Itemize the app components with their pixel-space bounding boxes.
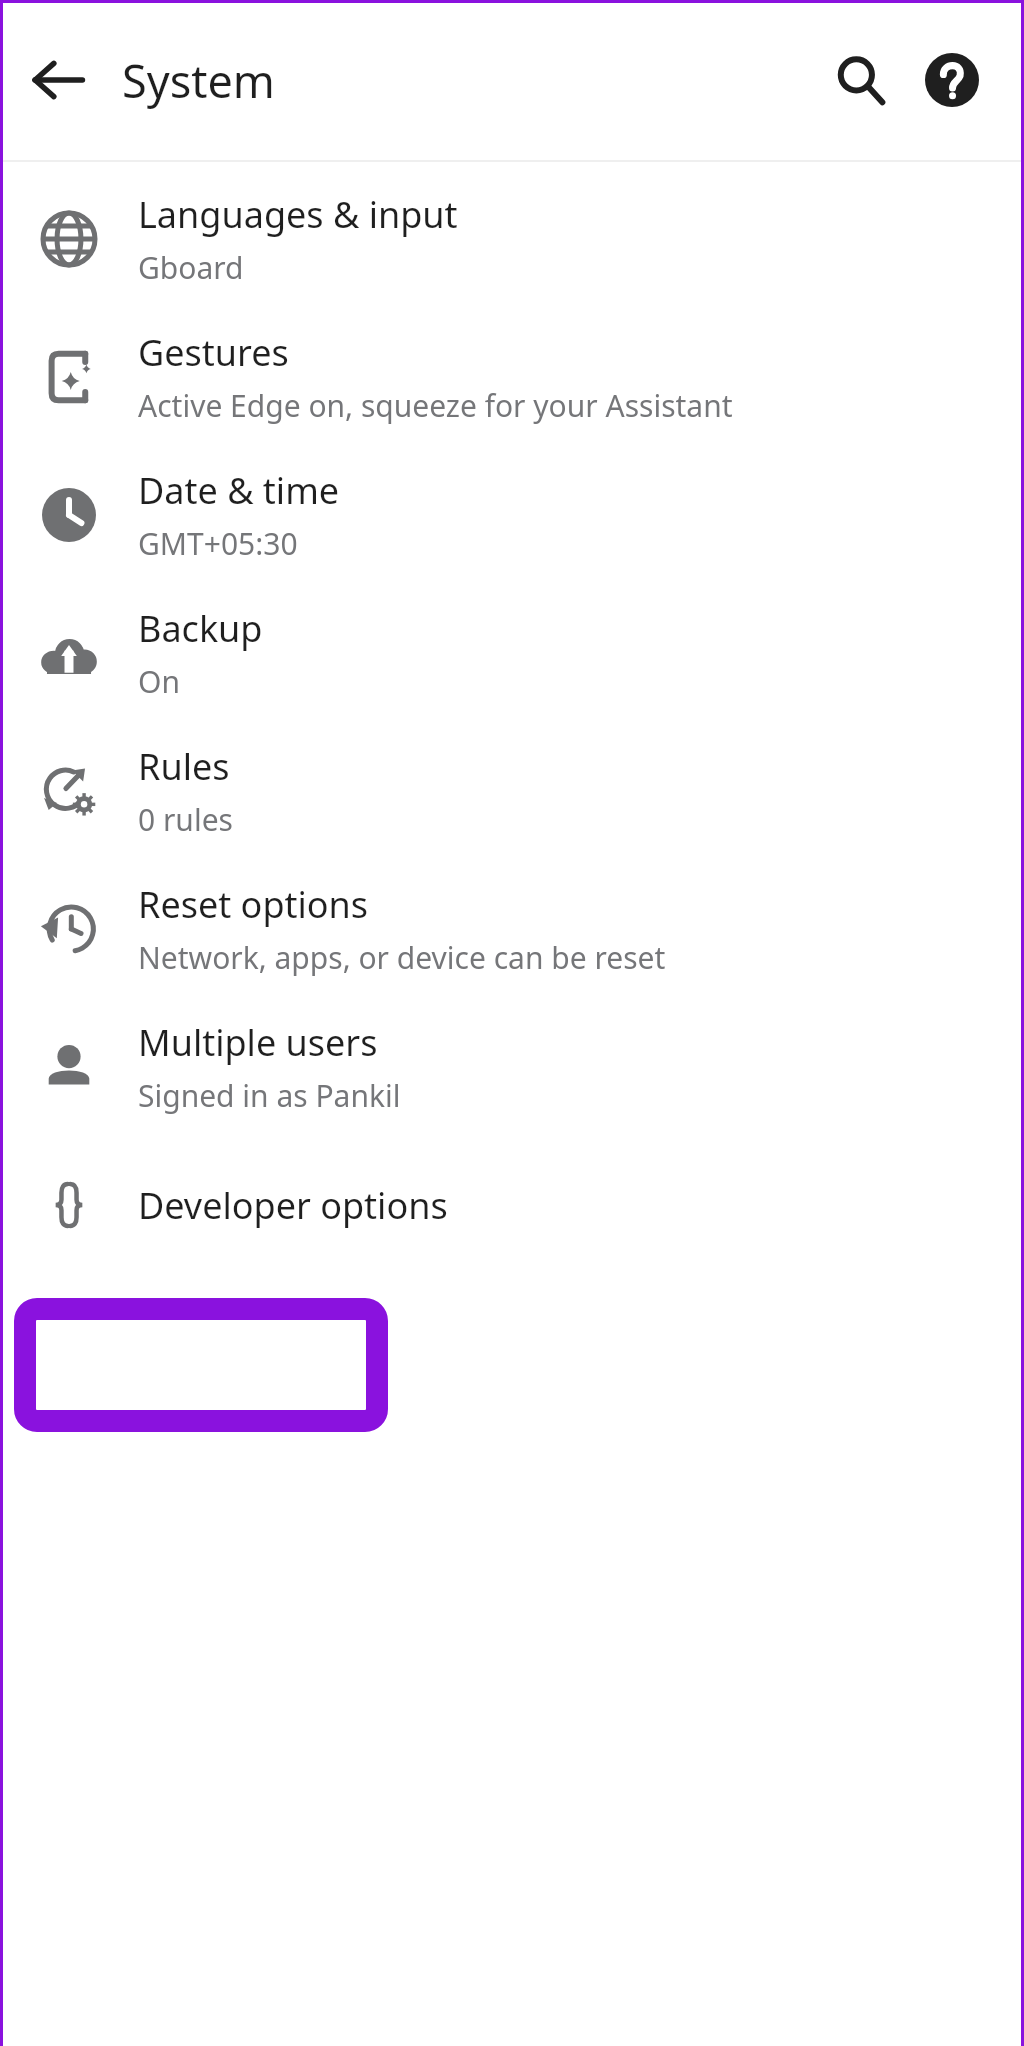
staticText: Network, apps, or device can be reset — [138, 937, 666, 978]
staticText: On — [138, 661, 180, 702]
button[interactable]: Back — [22, 44, 94, 116]
button[interactable]: Help — [910, 38, 994, 122]
staticText: 0 rules — [138, 799, 233, 840]
staticText: Date & time — [138, 466, 340, 515]
staticText: Gboard — [138, 247, 244, 288]
staticText: GMT+05:30 — [138, 523, 298, 564]
staticText: Rules — [138, 742, 230, 791]
staticText: Gestures — [138, 328, 289, 377]
staticText: Languages & input — [138, 190, 458, 239]
staticText: Reset options — [138, 880, 369, 929]
button[interactable]: Reset options — [0, 860, 1024, 998]
button[interactable]: Languages & input — [0, 170, 1024, 308]
staticText: Signed in as Pankil — [138, 1075, 401, 1116]
button[interactable]: Backup — [0, 584, 1024, 722]
staticText: Multiple users — [138, 1018, 378, 1067]
button[interactable]: Multiple users — [0, 998, 1024, 1136]
button[interactable]: Gestures — [0, 308, 1024, 446]
staticText: Active Edge on, squeeze for your Assista… — [138, 385, 733, 426]
button[interactable]: Rules — [0, 722, 1024, 860]
button[interactable]: Date & time — [0, 446, 1024, 584]
button[interactable]: Search — [818, 38, 902, 122]
staticText: Backup — [138, 604, 263, 653]
staticText: Developer options — [138, 1181, 448, 1230]
staticText: System — [122, 50, 275, 111]
button[interactable]: Developer options — [0, 1136, 1024, 1274]
